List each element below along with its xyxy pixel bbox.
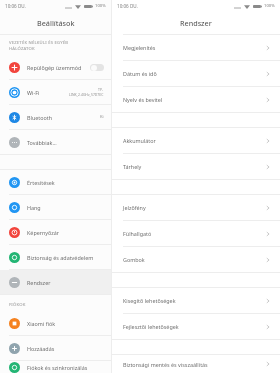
staticText: Értesítések	[27, 179, 55, 186]
button[interactable]: Fiókok és szinkronizálás	[0, 361, 111, 373]
button[interactable]: Bluetooth	[0, 105, 111, 129]
button[interactable]: Tárhely	[112, 154, 280, 179]
button[interactable]: Wi-Fi	[0, 80, 111, 104]
other: Wi-Fi	[75, 4, 81, 9]
other: Battery	[253, 4, 262, 9]
staticText: Nyelv és bevitel	[123, 96, 163, 103]
button[interactable]: Nyelv és bevitel	[112, 87, 280, 112]
staticText: Hozzáadás	[27, 345, 55, 352]
staticText: Biztonság és adatvédelem	[27, 254, 94, 261]
staticText: FIÓKOK	[9, 302, 26, 308]
staticText: Ki	[100, 114, 104, 120]
staticText: LINK_2.4GHz_57D7EC	[69, 92, 104, 97]
button[interactable]: Biztonsági mentés és visszaállítás	[112, 355, 280, 373]
staticText: Képernyőzár	[27, 229, 60, 236]
staticText: Fejlesztői lehetőségek	[123, 323, 179, 330]
button[interactable]: Képernyőzár	[0, 220, 111, 244]
staticText: Továbbiak...	[27, 139, 57, 146]
staticText: Wi-Fi	[27, 89, 40, 96]
staticText: Beállítások	[37, 18, 75, 28]
staticText: Xiaomi fiók	[27, 320, 56, 327]
button[interactable]: Rendszer	[0, 270, 111, 294]
staticText: HÁLÓZATOK	[9, 46, 35, 52]
button[interactable]: Fejlesztői lehetőségek	[112, 314, 280, 339]
staticText: Rendszer	[180, 18, 212, 28]
button[interactable]: Fülhallgató	[112, 221, 280, 246]
other: Battery	[84, 4, 93, 9]
button[interactable]: Hang	[0, 195, 111, 219]
button[interactable]: Xiaomi fiók	[0, 311, 111, 335]
staticText: Biztonsági mentés és visszaállítás	[123, 361, 208, 368]
staticText: Jelzőfény	[123, 204, 146, 211]
button[interactable]: Repülőgép üzemmód	[0, 55, 111, 79]
staticText: Megjelenítés	[123, 44, 156, 51]
staticText: Repülőgép üzemmód	[27, 64, 82, 71]
other: Signal	[65, 4, 72, 9]
button[interactable]: Értesítések	[0, 170, 111, 194]
button[interactable]: Dátum és idő	[112, 61, 280, 86]
button[interactable]: Hozzáadás	[0, 336, 111, 360]
button[interactable]: Megjelenítés	[112, 35, 280, 60]
staticText: Fülhallgató	[123, 230, 152, 237]
staticText: Hang	[27, 204, 41, 211]
staticText: Tárhely	[123, 163, 142, 170]
button[interactable]: Jelzőfény	[112, 195, 280, 220]
staticText: TP-	[98, 87, 104, 92]
other: Signal	[234, 4, 241, 9]
button[interactable]: Biztonság és adatvédelem	[0, 245, 111, 269]
staticText: Bluetooth	[27, 114, 53, 121]
staticText: Dátum és idő	[123, 70, 157, 77]
staticText: Kisegítő lehetőségek	[123, 297, 176, 304]
button[interactable]: Továbbiak...	[0, 130, 111, 154]
staticText: 10:06 DU.	[117, 3, 138, 9]
button[interactable]: Gombok	[112, 247, 280, 272]
staticText: 10:06 DU.	[5, 3, 26, 9]
button[interactable]: Kisegítő lehetőségek	[112, 288, 280, 313]
staticText: 100%	[264, 3, 275, 9]
staticText: Akkumulátor	[123, 137, 156, 144]
staticText: Gombok	[123, 256, 145, 263]
staticText: Rendszer	[27, 279, 51, 286]
other: Wi-Fi	[244, 4, 250, 9]
staticText: 100%	[95, 3, 106, 9]
button[interactable]: Akkumulátor	[112, 128, 280, 153]
staticText: Fiókok és szinkronizálás	[27, 364, 88, 371]
staticText: VEZETÉK NÉLKÜLI ÉS EGYÉB	[9, 40, 69, 46]
